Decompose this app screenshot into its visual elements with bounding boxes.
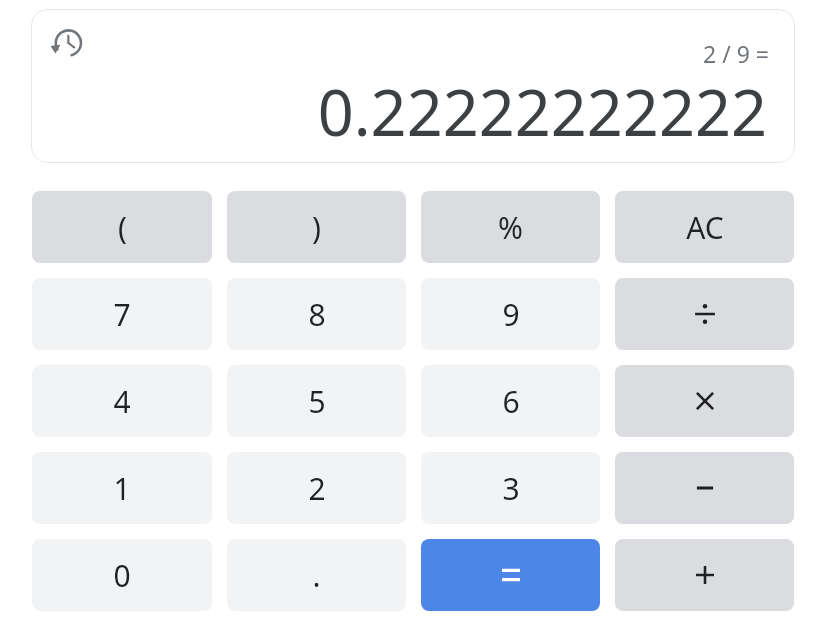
button[interactable]: 4 [32,365,212,437]
staticText: 0.22222222222 [317,69,767,155]
button[interactable]: 0 [32,539,212,611]
staticText: 3 [502,468,520,509]
staticText: . [312,555,321,596]
button[interactable]: 9 [421,278,600,350]
staticText: 5 [308,381,326,422]
button[interactable]: 3 [421,452,600,524]
staticText: AC [686,207,724,248]
button[interactable]: 2 [227,452,406,524]
staticText: 9 [502,294,520,335]
button[interactable]: % [421,191,600,263]
button[interactable]: 7 [32,278,212,350]
button[interactable]: Subtract [615,452,794,524]
button[interactable]: AC [615,191,794,263]
button[interactable]: 5 [227,365,406,437]
button[interactable]: 6 [421,365,600,437]
button[interactable]: 8 [227,278,406,350]
button[interactable]: Multiply [615,365,794,437]
staticText: 2 [308,468,326,509]
staticText: 0 [113,555,131,596]
button[interactable]: 1 [32,452,212,524]
button[interactable]: ( [32,191,212,263]
staticText: 4 [113,381,131,422]
button[interactable]: . [227,539,406,611]
staticText: ( [118,207,127,248]
staticText: 1 [113,468,131,509]
button[interactable]: Divide [615,278,794,350]
button[interactable]: Add [615,539,794,611]
staticText: 6 [502,381,520,422]
staticText: 2 / 9 = [703,38,769,69]
staticText: % [498,207,523,248]
button[interactable]: History [41,17,93,69]
staticText: ) [312,207,321,248]
button[interactable]: Equals [421,539,600,611]
staticText: 8 [308,294,326,335]
staticText: 7 [113,294,131,335]
button[interactable]: ) [227,191,406,263]
